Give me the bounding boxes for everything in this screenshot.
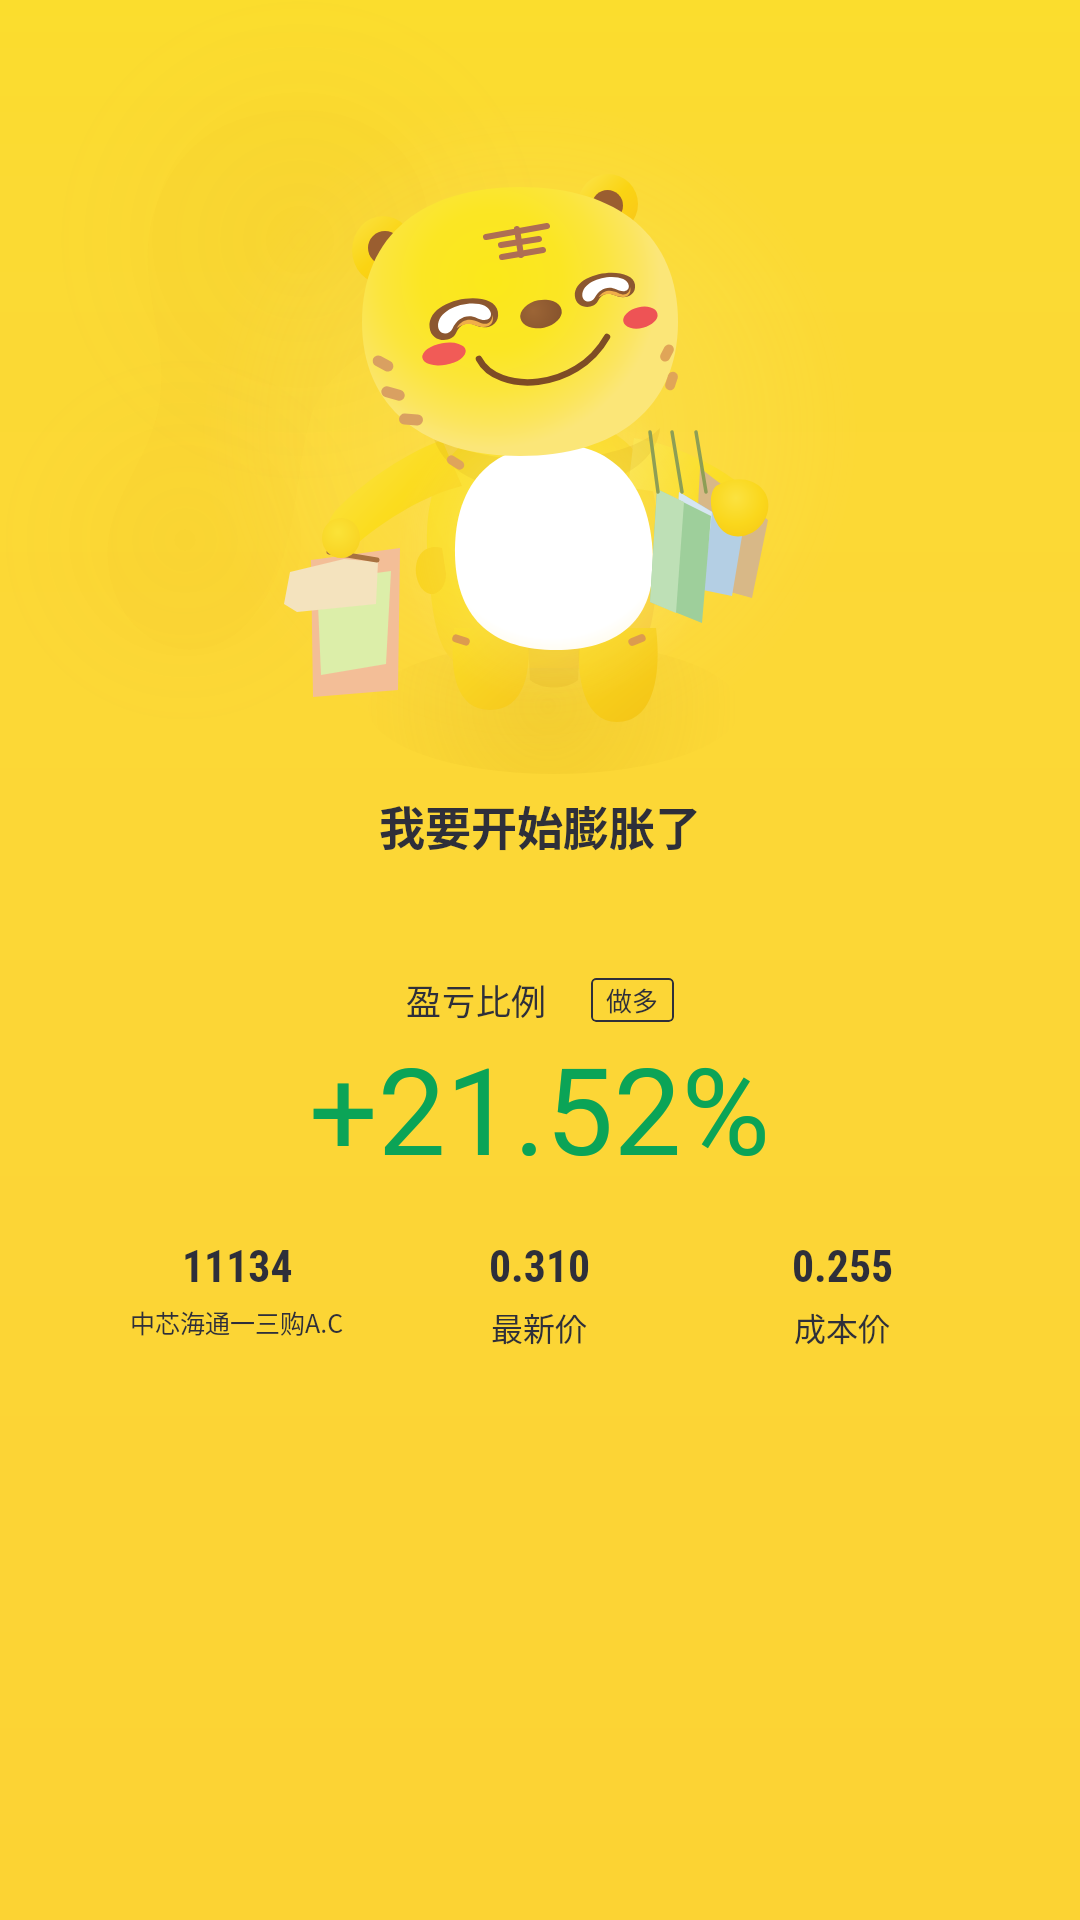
staticText: 0.310 <box>489 1241 591 1292</box>
staticText: 做多 <box>606 981 659 1019</box>
staticText: 11134 <box>182 1241 293 1292</box>
staticText: 最新价 <box>491 1304 588 1350</box>
staticText: 成本价 <box>794 1304 891 1350</box>
staticText: 我要开始膨胀了 <box>379 792 701 859</box>
button[interactable]: 做多 <box>591 978 674 1022</box>
staticText: +21.52% <box>309 1043 771 1185</box>
staticText: 0.255 <box>792 1241 894 1292</box>
staticText: 中芯海通一三购A.C <box>130 1304 344 1340</box>
staticText: 盈亏比例 <box>406 974 547 1025</box>
